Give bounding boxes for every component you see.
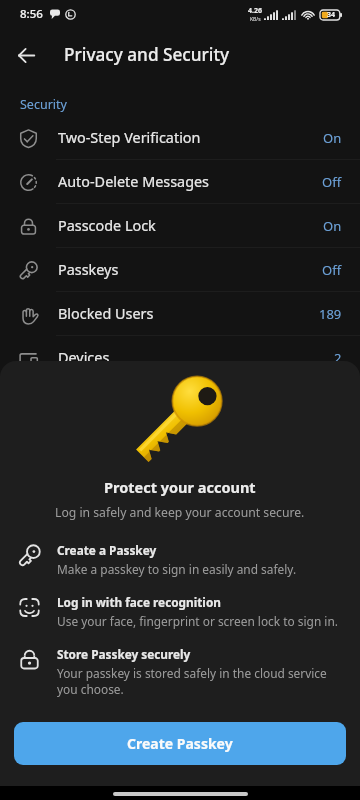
- staticText: On: [323, 217, 342, 235]
- staticText: Passkeys: [58, 260, 322, 280]
- staticText: On: [323, 129, 342, 147]
- staticText: Two-Step Verification: [58, 128, 323, 148]
- staticText: Log in safely and keep your account secu…: [55, 504, 305, 521]
- staticText: Log in with face recognition: [57, 594, 221, 610]
- staticText: Auto-Delete Messages: [58, 172, 322, 192]
- staticText: Create a Passkey: [57, 542, 157, 558]
- staticText: 189: [319, 305, 342, 323]
- button[interactable]: Passcode Lock: [0, 204, 360, 248]
- staticText: Store Passkey securely: [57, 646, 191, 662]
- staticText: 34: [327, 10, 336, 20]
- staticText: Privacy and Security: [64, 43, 230, 66]
- staticText: Off: [322, 173, 342, 191]
- button[interactable]: Back: [6, 34, 46, 74]
- staticText: Protect your account: [104, 477, 256, 497]
- staticText: 2: [334, 349, 342, 367]
- staticText: 4.26: [248, 6, 262, 16]
- button[interactable]: Blocked Users: [0, 292, 360, 336]
- staticText: Use your face, fingerprint or screen loc…: [57, 613, 338, 629]
- staticText: 8:56: [20, 6, 43, 22]
- staticText: Off: [322, 261, 342, 279]
- staticText: Create Passkey: [127, 734, 233, 753]
- staticText: Devices: [58, 348, 334, 368]
- staticText: Security: [20, 96, 67, 113]
- button[interactable]: Create Passkey: [14, 722, 346, 765]
- staticText: KB/s: [250, 16, 261, 23]
- button[interactable]: Two-Step Verification: [0, 116, 360, 160]
- staticText: Your passkey is stored safely in the clo…: [57, 665, 350, 698]
- staticText: Make a passkey to sign in easily and saf…: [57, 561, 297, 577]
- button[interactable]: Passkeys: [0, 248, 360, 292]
- staticText: Passcode Lock: [58, 216, 323, 236]
- button[interactable]: Auto-Delete Messages: [0, 160, 360, 204]
- staticText: Blocked Users: [58, 304, 319, 324]
- button[interactable]: Devices: [0, 336, 360, 380]
